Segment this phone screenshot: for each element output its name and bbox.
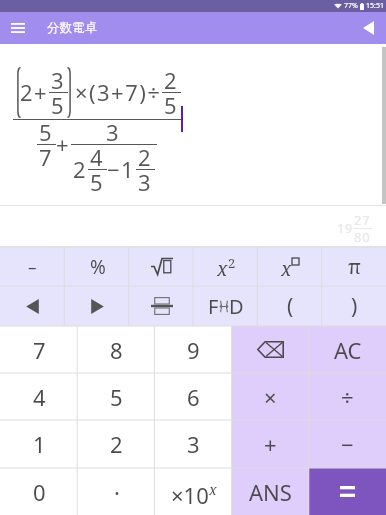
- staticText: 2: [73, 154, 88, 184]
- staticText: 2: [164, 65, 179, 95]
- staticText: 7: [33, 335, 46, 365]
- staticText: ×: [264, 382, 277, 412]
- staticText: (: [287, 292, 294, 321]
- staticText: %: [90, 254, 106, 280]
- staticText: 3: [138, 167, 153, 197]
- staticText: 2: [138, 142, 153, 172]
- staticText: 7: [39, 142, 54, 172]
- staticText: 8: [110, 335, 123, 365]
- staticText: x: [217, 256, 228, 278]
- button[interactable]: Back: [350, 12, 386, 44]
- button[interactable]: x squared: [194, 247, 258, 286]
- staticText: 80: [354, 228, 371, 246]
- staticText: 3: [106, 117, 121, 147]
- button[interactable]: π: [322, 247, 386, 286]
- staticText: 9: [187, 335, 200, 365]
- button[interactable]: ANS: [232, 468, 309, 515]
- staticText: +: [264, 429, 277, 459]
- staticText: –: [28, 255, 37, 278]
- button[interactable]: ): [322, 286, 386, 326]
- staticText: ): [351, 292, 358, 321]
- button[interactable]: Fraction decimal toggle: [194, 286, 258, 326]
- staticText: x: [209, 480, 217, 499]
- staticText: 6: [187, 382, 200, 412]
- staticText: 2: [110, 429, 123, 459]
- staticText: 5: [39, 117, 54, 147]
- button[interactable]: 7: [0, 326, 78, 373]
- staticText: 19: [337, 219, 353, 237]
- button[interactable]: −: [309, 420, 386, 468]
- staticText: ×(3+7)÷: [75, 77, 162, 107]
- staticText: −1: [107, 154, 136, 184]
- staticText: 2+: [20, 77, 49, 107]
- button[interactable]: x to the power: [258, 247, 322, 286]
- staticText: 3: [187, 429, 200, 459]
- staticText: π: [348, 253, 361, 280]
- staticText: −: [341, 429, 354, 459]
- staticText: 5: [90, 167, 105, 197]
- button[interactable]: ×10: [155, 468, 232, 515]
- button[interactable]: 4: [0, 373, 78, 420]
- button[interactable]: 0: [0, 468, 78, 515]
- staticText: ÷: [341, 382, 354, 412]
- staticText: 77%: [344, 1, 358, 11]
- staticText: 3: [51, 65, 66, 95]
- button[interactable]: 6: [155, 373, 232, 420]
- staticText: 0: [33, 477, 46, 507]
- staticText: 5: [110, 382, 123, 412]
- button[interactable]: 9: [155, 326, 232, 373]
- button[interactable]: 8: [78, 326, 155, 373]
- staticText: 4: [90, 142, 105, 172]
- button[interactable]: Equals: [309, 468, 386, 515]
- staticText: 5: [51, 90, 66, 120]
- staticText: 4: [33, 382, 46, 412]
- button[interactable]: ÷: [309, 373, 386, 420]
- staticText: ANS: [249, 477, 292, 507]
- button[interactable]: %: [65, 247, 130, 286]
- staticText: 1: [33, 429, 46, 459]
- button[interactable]: AC: [309, 326, 386, 373]
- staticText: 27: [354, 211, 371, 229]
- staticText: 2: [228, 254, 236, 272]
- button[interactable]: (: [258, 286, 322, 326]
- staticText: AC: [334, 335, 362, 365]
- button[interactable]: +: [232, 420, 309, 468]
- button[interactable]: Backspace: [232, 326, 309, 373]
- button[interactable]: ·: [78, 468, 155, 515]
- button[interactable]: Fraction: [130, 286, 194, 326]
- staticText: ·: [114, 477, 120, 507]
- staticText: F: [208, 293, 219, 320]
- button[interactable]: 1: [0, 420, 78, 468]
- staticText: x: [281, 256, 292, 278]
- staticText: 5: [164, 90, 179, 120]
- staticText: 15:51: [366, 1, 384, 11]
- button[interactable]: Negative: [0, 247, 65, 286]
- button[interactable]: 3: [155, 420, 232, 468]
- button[interactable]: ×: [232, 373, 309, 420]
- button[interactable]: 5: [78, 373, 155, 420]
- button[interactable]: 2: [78, 420, 155, 468]
- staticText: 分数電卓: [47, 20, 97, 36]
- button[interactable]: Move right: [65, 286, 130, 326]
- staticText: D: [229, 293, 244, 320]
- staticText: ×10: [171, 480, 209, 504]
- button[interactable]: Move left: [0, 286, 65, 326]
- button[interactable]: Square root: [130, 247, 194, 286]
- button[interactable]: Menu: [0, 12, 36, 44]
- staticText: +: [56, 129, 71, 159]
